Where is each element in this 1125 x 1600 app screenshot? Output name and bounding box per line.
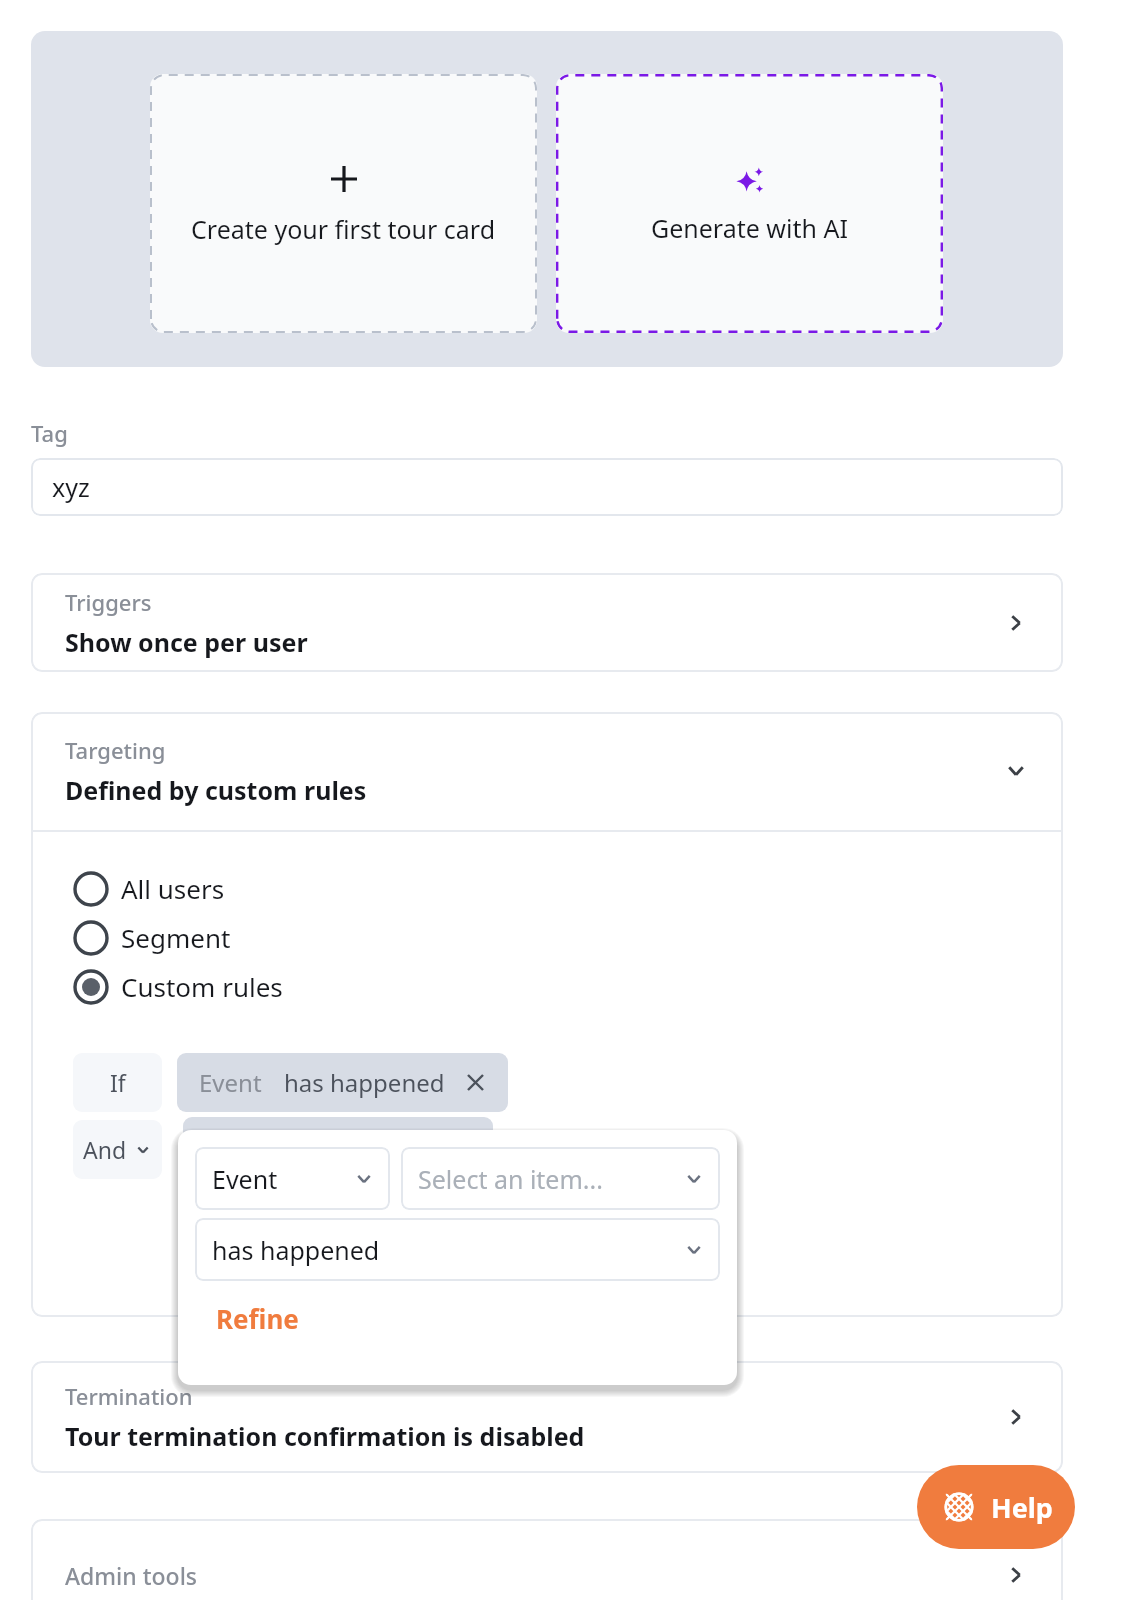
staticText: Help [991,1489,1053,1526]
button[interactable]: Targeting [31,712,1063,830]
staticText: And [83,1134,127,1165]
staticText: Event [199,1066,262,1099]
staticText: Triggers [65,587,152,617]
button[interactable]: Help [917,1465,1075,1549]
staticText: Refine [216,1301,299,1336]
staticText: has happened [212,1233,380,1267]
button[interactable]: Select an item... [401,1147,720,1210]
staticText: Generate with AI [651,211,848,245]
button[interactable]: Segment [73,913,493,962]
button[interactable]: And [73,1120,162,1179]
button[interactable]: xyz [31,458,1063,516]
staticText: Event [212,1162,278,1196]
staticText: All users [121,871,225,906]
staticText: Segment [121,920,231,955]
staticText: Tag [31,418,68,448]
button[interactable]: Admin tools [31,1519,1063,1600]
button[interactable]: Triggers [31,573,1063,672]
button[interactable]: Create your first tour card [150,74,537,333]
button[interactable]: Generate with AI [556,74,943,333]
staticText: Termination [65,1381,193,1411]
staticText: Create your first tour card [191,212,496,246]
staticText: Tour termination confirmation is disable… [65,1419,585,1453]
staticText: Defined by custom rules [65,773,367,807]
button[interactable]: Event [177,1053,508,1112]
button[interactable]: has happened [195,1218,720,1281]
button[interactable]: Event [195,1147,390,1210]
staticText: xyz [52,470,90,504]
staticText: If [110,1067,126,1098]
staticText: has happened [284,1066,445,1099]
button[interactable]: Refine [195,1290,345,1346]
button[interactable]: If [73,1053,162,1112]
staticText: Show once per user [65,625,308,659]
staticText: Targeting [65,735,166,765]
staticText: Admin tools [65,1560,198,1591]
staticText: Select an item... [418,1162,603,1196]
button[interactable]: All users [73,864,493,913]
button[interactable]: Termination [31,1361,1063,1473]
button[interactable]: Custom rules [73,962,493,1011]
staticText: Custom rules [121,969,283,1004]
